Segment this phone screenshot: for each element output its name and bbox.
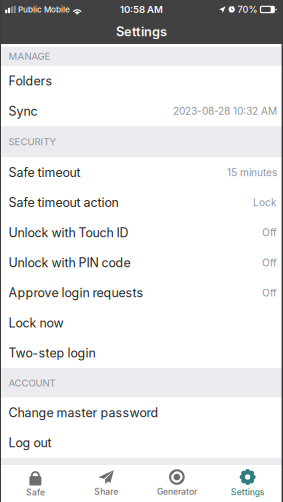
staticText: 10:58 AM xyxy=(120,4,163,15)
staticText: Lock xyxy=(253,196,277,209)
staticText: Sync xyxy=(8,104,37,119)
button[interactable]: Safe timeout xyxy=(0,157,283,187)
staticText: Log out xyxy=(8,435,51,450)
button[interactable]: Two-step login xyxy=(0,338,283,368)
staticText: 70% xyxy=(237,4,257,15)
staticText: Unlock with PIN code xyxy=(8,255,130,270)
staticText: Unlock with Touch ID xyxy=(8,225,128,240)
staticText: Safe timeout action xyxy=(8,195,118,210)
button[interactable]: Safe xyxy=(0,465,71,502)
staticText: Two-step login xyxy=(8,345,95,360)
button[interactable]: Settings xyxy=(212,465,283,502)
staticText: Approve login requests xyxy=(8,285,143,300)
button[interactable]: Generator xyxy=(141,465,212,502)
staticText: Safe timeout xyxy=(8,165,80,180)
staticText: MANAGE xyxy=(8,50,50,62)
staticText: Off xyxy=(262,257,277,269)
staticText: Change master password xyxy=(8,405,158,420)
staticText: SECURITY xyxy=(8,136,56,148)
staticText: Off xyxy=(262,226,277,239)
button[interactable]: Lock now xyxy=(0,308,283,338)
button[interactable]: Folders xyxy=(0,66,283,96)
staticText: Folders xyxy=(8,73,52,88)
button[interactable]: Log out xyxy=(0,428,283,458)
button[interactable]: Unlock with PIN code xyxy=(0,248,283,278)
staticText: Generator xyxy=(157,486,197,497)
button[interactable]: Approve login requests xyxy=(0,278,283,308)
staticText: Off xyxy=(262,287,277,299)
button[interactable]: Unlock with Touch ID xyxy=(0,218,283,248)
staticText: ACCOUNT xyxy=(8,377,55,389)
staticText: Settings xyxy=(116,24,167,39)
staticText: Safe xyxy=(26,487,45,497)
button[interactable]: Change master password xyxy=(0,398,283,428)
staticText: Share xyxy=(94,486,118,497)
staticText: 15 minutes xyxy=(227,166,277,179)
staticText: 2023-08-28 10:32 AM xyxy=(173,105,277,117)
button[interactable]: Safe timeout action xyxy=(0,187,283,218)
staticText: Public Mobile xyxy=(18,5,70,14)
button[interactable]: Share xyxy=(71,465,142,502)
button[interactable]: Sync xyxy=(0,96,283,126)
staticText: Lock now xyxy=(8,315,63,330)
staticText: Settings xyxy=(231,487,265,497)
